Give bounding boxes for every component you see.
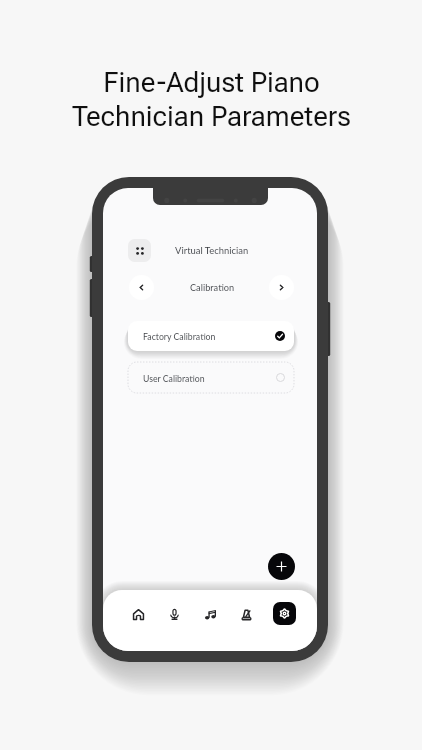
staticText: Calibration (190, 282, 235, 293)
button[interactable]: User Calibration (128, 362, 294, 393)
staticText: Virtual Technician (175, 245, 249, 256)
staticText: User Calibration (143, 373, 205, 383)
button[interactable]: Home (129, 605, 147, 623)
button[interactable]: Music (201, 605, 219, 623)
button[interactable]: Previous page (129, 275, 154, 300)
staticText: Factory Calibration (143, 331, 216, 341)
staticText: Fine-Adjust Piano Technician Parameters (72, 66, 351, 133)
button[interactable]: Factory Calibration (128, 321, 294, 351)
button[interactable]: Metronome (237, 605, 255, 623)
button[interactable]: Next page (269, 275, 294, 300)
button[interactable]: Menu (128, 239, 151, 262)
button[interactable]: Voice (165, 605, 183, 623)
button[interactable]: Settings (273, 602, 296, 625)
button[interactable]: Add (268, 553, 295, 580)
